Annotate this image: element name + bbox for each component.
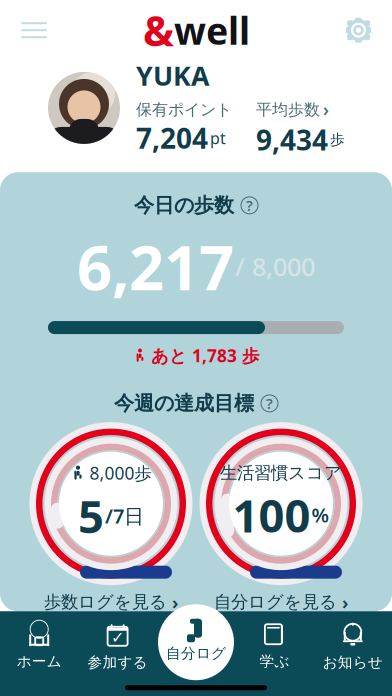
button[interactable]: YUKA [0, 58, 392, 172]
staticText: 7,204 [136, 119, 208, 157]
button[interactable]: 自分ログを見る [214, 590, 348, 614]
staticText: ? [246, 196, 253, 215]
staticText: 6,217 [77, 226, 234, 307]
staticText: 参加する [88, 653, 148, 671]
staticText: 9,434 [256, 121, 328, 158]
staticText: 今週の達成目標 [114, 391, 254, 416]
staticText: 5 [78, 486, 104, 546]
staticText: / 8,000 [235, 249, 315, 283]
staticText: pt [210, 127, 226, 149]
button[interactable]: 今日の歩数について [241, 197, 258, 214]
staticText: お知らせ [323, 653, 383, 671]
staticText: › [342, 590, 348, 614]
button[interactable]: Settings [331, 5, 386, 56]
button[interactable]: 今週の達成目標について [261, 395, 278, 412]
staticText: ホーム [17, 652, 62, 670]
button[interactable]: 歩数ログを見る [44, 590, 178, 614]
staticText: 今日の歩数 [134, 193, 234, 218]
staticText: あと 1,783 歩 [151, 344, 259, 367]
staticText: 歩数ログを見る [44, 591, 167, 613]
staticText: › [172, 590, 178, 614]
button[interactable]: 学ぶ [235, 612, 314, 670]
staticText: 平均歩数 [256, 100, 320, 119]
staticText: % [311, 501, 329, 528]
button[interactable]: Menu [6, 6, 62, 54]
staticText: ? [266, 394, 273, 413]
button[interactable]: ホーム [0, 612, 78, 670]
staticText: 100 [232, 485, 310, 545]
staticText: 自分ログ [166, 644, 226, 662]
staticText: /7日 [105, 502, 144, 529]
staticText: 保有ポイント [136, 100, 232, 119]
staticText: 学ぶ [259, 652, 289, 670]
staticText: 生活習慣スコア [220, 462, 342, 484]
staticText: ✓ [111, 629, 124, 647]
staticText: & [143, 3, 174, 58]
staticText: well [174, 5, 250, 55]
staticText: 自分ログを見る [214, 591, 337, 613]
button[interactable]: ✓ [78, 611, 157, 671]
button[interactable]: お知らせ [314, 611, 392, 671]
staticText: 8,000歩 [89, 461, 151, 484]
staticText: 歩 [330, 131, 345, 149]
button[interactable]: 自分ログ [158, 604, 234, 680]
staticText: › [323, 98, 329, 121]
staticText: YUKA [136, 58, 209, 93]
